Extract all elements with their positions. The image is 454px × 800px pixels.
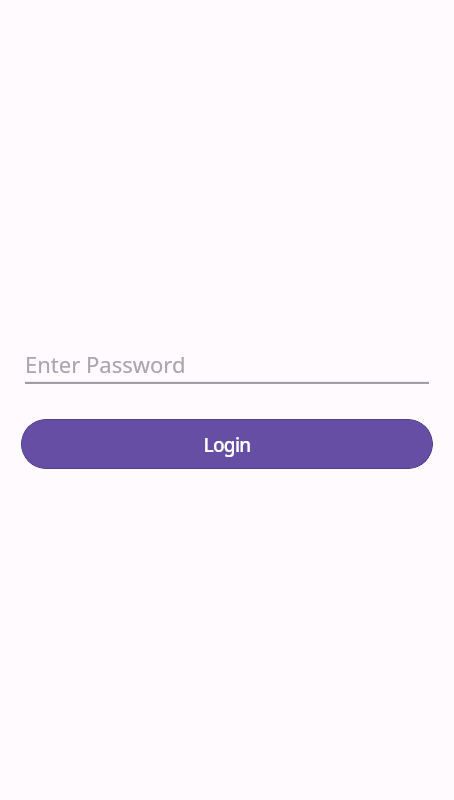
staticText: Enter Password (25, 349, 186, 379)
button[interactable]: Login (21, 419, 433, 469)
button[interactable]: Password input field (25, 348, 429, 384)
staticText: Login (203, 432, 251, 458)
